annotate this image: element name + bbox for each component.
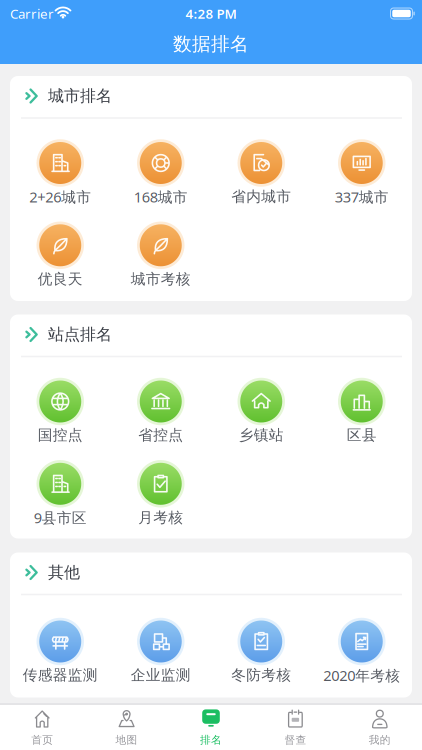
- staticText: 站点排名: [48, 325, 112, 344]
- staticText: 数据排名: [173, 32, 249, 55]
- button[interactable]: 337城市: [312, 139, 412, 209]
- staticText: 企业监测: [131, 666, 191, 684]
- staticText: 地图: [116, 733, 138, 746]
- staticText: 2+26城市: [29, 187, 91, 206]
- button[interactable]: 2020年考核: [312, 617, 412, 687]
- button[interactable]: 冬防考核: [211, 617, 311, 687]
- button[interactable]: 优良天: [10, 221, 110, 291]
- staticText: 4:28 PM: [185, 5, 236, 22]
- button[interactable]: 区县: [312, 377, 412, 447]
- staticText: 其他: [48, 563, 80, 582]
- staticText: 月考核: [138, 508, 183, 526]
- staticText: 337城市: [335, 187, 389, 206]
- button[interactable]: 首页: [12, 704, 72, 750]
- button[interactable]: 省内城市: [211, 139, 311, 209]
- staticText: 9县市区: [34, 508, 87, 527]
- staticText: 省内城市: [231, 188, 291, 206]
- staticText: 排名: [200, 733, 222, 746]
- staticText: 优良天: [38, 270, 83, 288]
- button[interactable]: 城市考核: [111, 221, 211, 291]
- button[interactable]: 省控点: [111, 377, 211, 447]
- staticText: 城市排名: [48, 86, 112, 106]
- staticText: 168城市: [134, 187, 188, 206]
- staticText: 冬防考核: [231, 666, 291, 684]
- staticText: 乡镇站: [239, 426, 284, 444]
- button[interactable]: 传感器监测: [10, 617, 110, 687]
- staticText: Carrier: [10, 5, 54, 22]
- button[interactable]: 9县市区: [10, 460, 110, 530]
- staticText: 城市考核: [131, 270, 191, 288]
- staticText: 省控点: [138, 426, 183, 444]
- staticText: 2020年考核: [323, 665, 400, 685]
- staticText: 国控点: [38, 426, 83, 444]
- button[interactable]: 2+26城市: [10, 139, 110, 209]
- staticText: 首页: [31, 733, 53, 746]
- staticText: 我的: [369, 733, 391, 746]
- button[interactable]: 168城市: [111, 139, 211, 209]
- button[interactable]: 地图: [97, 704, 157, 750]
- button[interactable]: 国控点: [10, 377, 110, 447]
- button[interactable]: 排名: [181, 704, 241, 750]
- button[interactable]: 乡镇站: [211, 377, 311, 447]
- button[interactable]: 督查: [265, 704, 325, 750]
- staticText: 区县: [347, 426, 377, 444]
- staticText: 传感器监测: [23, 666, 98, 684]
- button[interactable]: 月考核: [111, 460, 211, 530]
- staticText: 督查: [284, 733, 306, 746]
- button[interactable]: 企业监测: [111, 617, 211, 687]
- button[interactable]: 我的: [350, 704, 410, 750]
